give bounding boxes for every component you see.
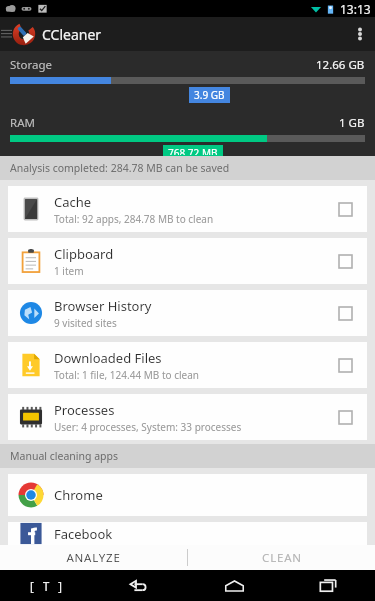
button[interactable]: Open navigation drawer xyxy=(0,17,12,51)
button[interactable]: More options xyxy=(345,17,375,51)
button[interactable]: CLEAN xyxy=(188,545,375,570)
button[interactable]: ANALYZE xyxy=(0,545,187,570)
button[interactable]: Keyboard xyxy=(0,570,93,601)
staticText: Total: 92 apps, 284.78 MB to clean xyxy=(54,212,214,226)
staticText: User: 4 processes, System: 33 processes xyxy=(54,420,242,434)
staticText: CLEAN xyxy=(262,550,302,566)
staticText: [ T ] xyxy=(28,578,65,594)
staticText: 9 visited sites xyxy=(54,316,117,330)
staticText: Processes xyxy=(54,401,115,419)
staticText: Facebook xyxy=(54,525,113,543)
button[interactable]: Clipboard xyxy=(8,238,367,284)
staticText: 1 item xyxy=(54,264,84,278)
button[interactable]: Select Cache xyxy=(323,186,367,232)
button[interactable]: Downloaded Files xyxy=(8,342,367,388)
button[interactable]: Select Browser History xyxy=(323,290,367,336)
staticText: 768.72 MB xyxy=(168,146,218,155)
staticText: Analysis completed: 284.78 MB can be sav… xyxy=(10,161,230,175)
button[interactable]: Back xyxy=(93,570,187,601)
button[interactable]: Cache xyxy=(8,186,367,232)
staticText: Browser History xyxy=(54,297,152,315)
button[interactable]: Select Clipboard xyxy=(323,238,367,284)
button[interactable]: Processes xyxy=(8,394,367,440)
staticText: 13:13 xyxy=(340,1,371,17)
staticText: Cache xyxy=(54,193,92,211)
button[interactable]: Select Downloaded Files xyxy=(323,342,367,388)
staticText: Total: 1 file, 124.44 MB to clean xyxy=(54,368,199,382)
staticText: Clipboard xyxy=(54,245,114,263)
staticText: 3.9 GB xyxy=(194,88,225,102)
staticText: ANALYZE xyxy=(66,550,121,566)
button[interactable]: Select Processes xyxy=(323,394,367,440)
button[interactable]: Chrome xyxy=(8,474,367,516)
staticText: 1 GB xyxy=(339,115,365,131)
staticText: RAM xyxy=(10,115,35,131)
button[interactable]: Recent apps xyxy=(281,570,375,601)
staticText: Manual cleaning apps xyxy=(10,449,118,463)
staticText: Chrome xyxy=(54,486,103,504)
staticText: Storage xyxy=(10,57,52,73)
button[interactable]: Browser History xyxy=(8,290,367,336)
button[interactable]: Home xyxy=(187,570,281,601)
staticText: CCleaner xyxy=(42,25,102,44)
button[interactable]: Facebook xyxy=(8,522,367,545)
staticText: 12.66 GB xyxy=(316,57,365,73)
staticText: Downloaded Files xyxy=(54,349,162,367)
